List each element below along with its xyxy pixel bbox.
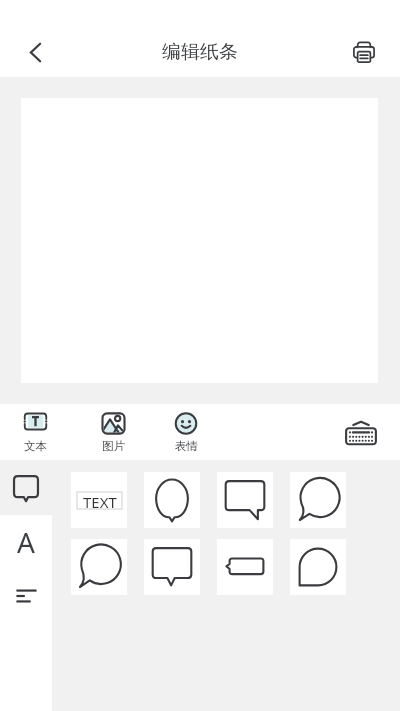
button[interactable]: Bubble shape xyxy=(144,472,200,528)
staticText: 表情 xyxy=(175,439,198,453)
button[interactable]: Bubble shape xyxy=(144,539,200,595)
button[interactable]: 文本 xyxy=(13,408,57,456)
button[interactable]: Print xyxy=(342,30,386,74)
staticText: 编辑纸条 xyxy=(162,40,238,64)
button[interactable]: Keyboard xyxy=(338,412,383,454)
button[interactable]: Bubble shape xyxy=(217,539,273,595)
button[interactable]: Text box xyxy=(71,472,127,528)
button[interactable]: Bubble shape xyxy=(290,472,346,528)
button[interactable]: Back xyxy=(13,30,57,74)
button[interactable]: 表情 xyxy=(164,408,208,456)
button[interactable]: Text alignment xyxy=(0,569,52,623)
button[interactable]: Bubble shapes xyxy=(0,461,52,515)
button[interactable]: Bubble shape xyxy=(290,539,346,595)
staticText: TEXT xyxy=(83,492,117,509)
button[interactable]: Bubble shape xyxy=(217,472,273,528)
button[interactable]: Font xyxy=(0,515,52,569)
staticText: 图片 xyxy=(102,439,125,453)
button[interactable]: 图片 xyxy=(91,408,135,456)
staticText: A xyxy=(17,523,35,561)
button[interactable]: Bubble shape xyxy=(71,539,127,595)
staticText: 文本 xyxy=(24,439,47,453)
